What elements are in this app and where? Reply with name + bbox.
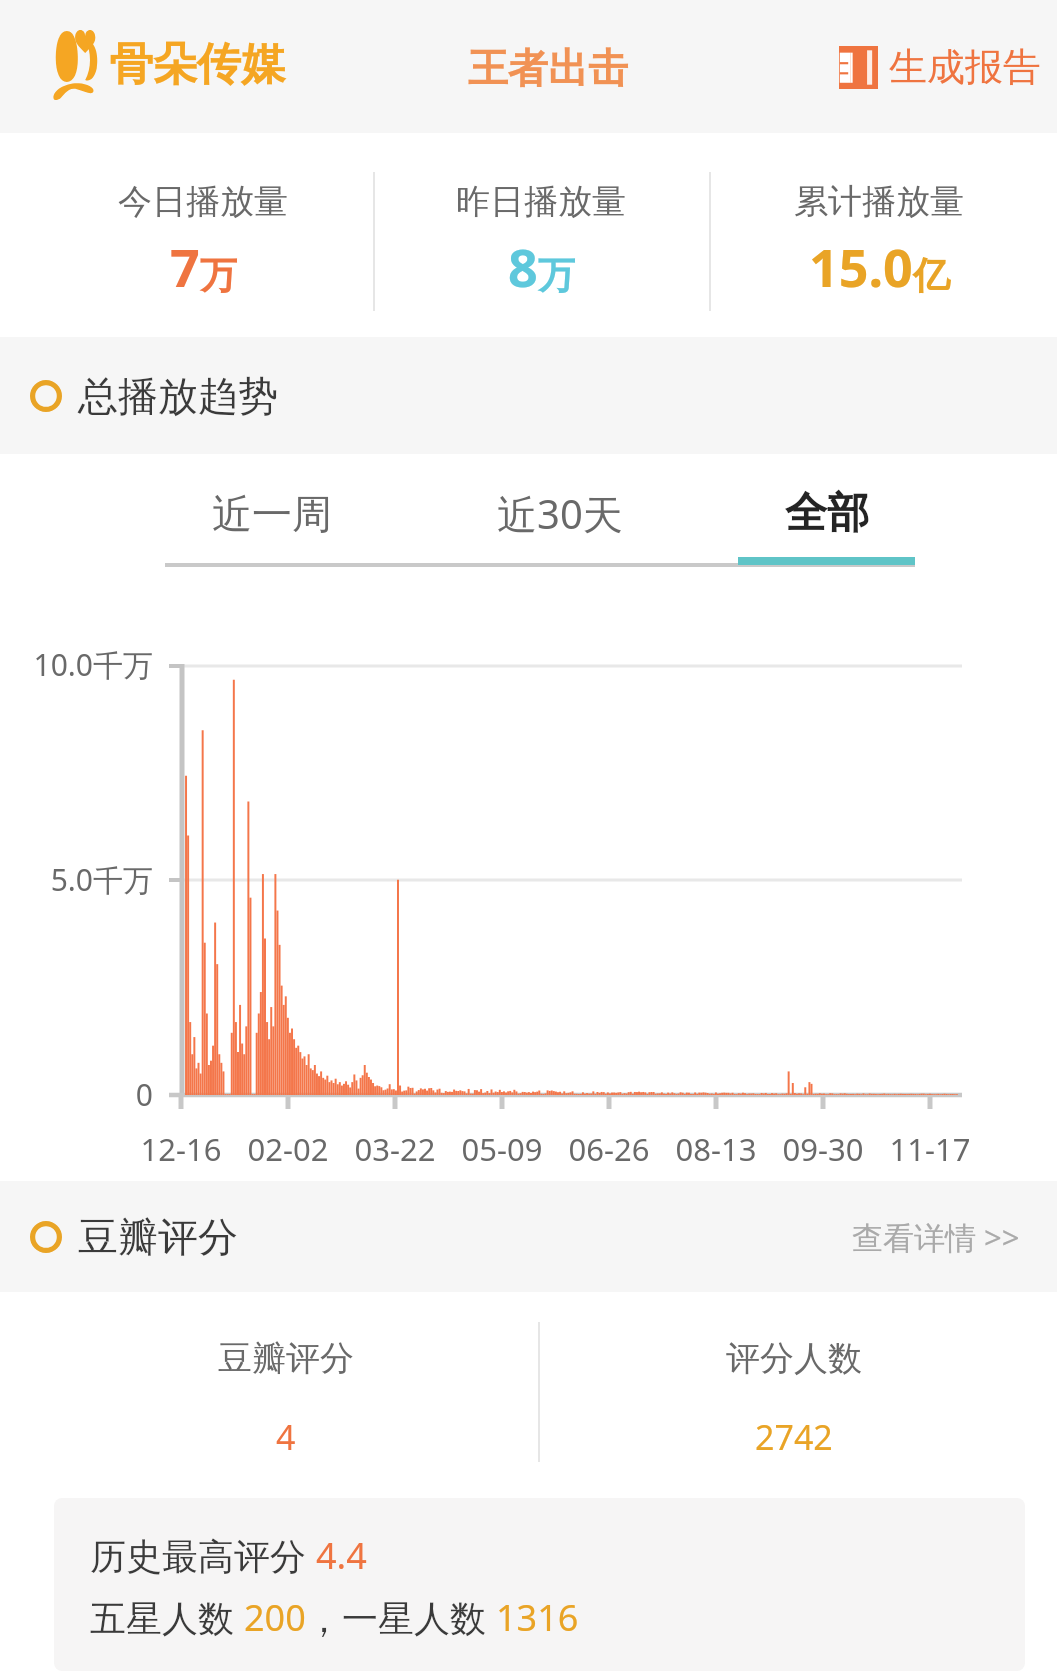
staticText: 王者出击 <box>468 43 628 93</box>
staticText: 8 <box>508 231 538 302</box>
staticText: 2742 <box>755 1414 833 1460</box>
staticText: 02-02 <box>228 1128 348 1170</box>
staticText: 7 <box>170 231 200 302</box>
button[interactable]: 全部 <box>738 454 916 563</box>
button[interactable]: 查看详情 >> <box>852 1216 1020 1258</box>
staticText: 总播放趋势 <box>78 371 278 421</box>
staticText: 豆瓣评分 <box>78 1212 238 1262</box>
staticText: 近一周 <box>212 489 332 539</box>
staticText: 全部 <box>785 487 869 540</box>
staticText: 今日播放量 <box>118 180 288 223</box>
staticText: 03-22 <box>335 1128 455 1170</box>
staticText: 4 <box>276 1414 296 1460</box>
staticText: 11-17 <box>870 1128 990 1170</box>
staticText: 昨日播放量 <box>456 180 626 223</box>
button[interactable]: 骨朵传媒 <box>53 31 285 98</box>
button[interactable]: 累计播放量 <box>710 133 1048 337</box>
staticText: 0 <box>0 1074 153 1115</box>
staticText: 05-09 <box>442 1128 562 1170</box>
staticText: 08-13 <box>656 1128 776 1170</box>
other: 生成报告 <box>839 46 878 89</box>
staticText: 200 <box>244 1593 306 1642</box>
staticText: 15.0 <box>809 231 913 302</box>
staticText: 豆瓣评分 <box>218 1337 354 1380</box>
staticText: 06-26 <box>549 1128 669 1170</box>
staticText: 近30天 <box>497 486 623 541</box>
staticText: 骨朵传媒 <box>109 37 285 92</box>
staticText: 10.0千万 <box>0 644 153 685</box>
button[interactable]: 今日播放量 <box>34 133 372 337</box>
staticText: 亿 <box>913 252 950 299</box>
staticText: 一星人数 <box>342 1593 496 1642</box>
button[interactable]: 近一周 <box>172 454 372 563</box>
button[interactable]: 历史最高评分 <box>54 1498 1025 1671</box>
staticText: 12-16 <box>121 1128 241 1170</box>
staticText: 09-30 <box>763 1128 883 1170</box>
staticText: 评分人数 <box>726 1337 862 1380</box>
staticText: 万 <box>538 252 575 299</box>
staticText: 4.4 <box>316 1531 367 1580</box>
staticText: 5.0千万 <box>0 859 153 900</box>
button[interactable]: 近30天 <box>460 454 660 563</box>
staticText: ， <box>306 1597 342 1642</box>
button[interactable]: 豆瓣评分 <box>33 1292 538 1498</box>
button[interactable]: 昨日播放量 <box>372 133 710 337</box>
staticText: 历史最高评分 <box>90 1531 316 1580</box>
button[interactable]: 评分人数 <box>539 1292 1048 1498</box>
staticText: 累计播放量 <box>794 180 964 223</box>
staticText: 生成报告 <box>889 43 1041 91</box>
staticText: 五星人数 <box>90 1593 244 1642</box>
staticText: 万 <box>200 252 237 299</box>
button[interactable]: 生成报告 <box>839 43 1041 91</box>
staticText: 1316 <box>496 1593 579 1642</box>
